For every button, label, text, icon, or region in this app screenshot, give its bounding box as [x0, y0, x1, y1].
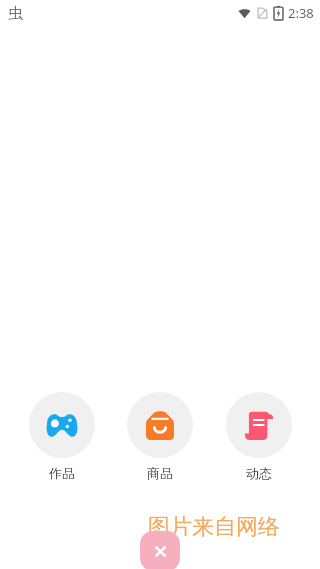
staticText: 虫: [8, 4, 23, 23]
staticText: 动态: [246, 465, 272, 481]
staticText: 2:38: [288, 4, 314, 22]
staticText: 作品: [49, 465, 75, 481]
button[interactable]: Close: [140, 531, 180, 569]
staticText: 图片来自网络: [148, 513, 280, 541]
button[interactable]: 作品 Works: [17, 392, 107, 481]
staticText: 商品: [147, 465, 173, 481]
button[interactable]: 动态 Feed: [214, 392, 304, 481]
button[interactable]: 商品 Goods: [115, 392, 205, 481]
